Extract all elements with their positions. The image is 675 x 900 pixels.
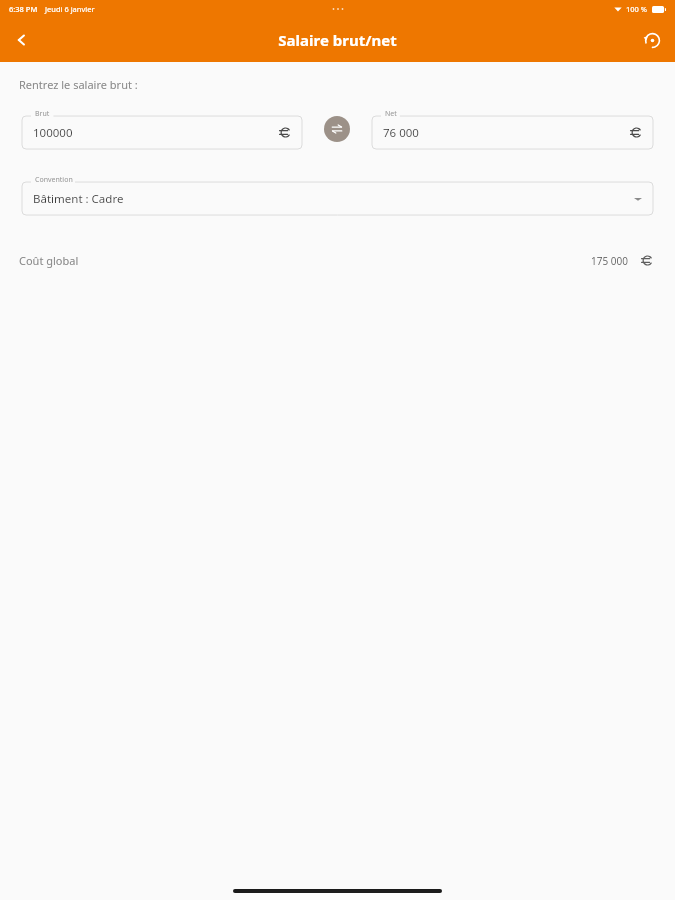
button[interactable]: Swap brut and net xyxy=(324,116,350,142)
staticText: 76 000 xyxy=(383,125,419,141)
staticText: Bâtiment : Cadre xyxy=(33,191,124,207)
staticText: Rentrez le salaire brut : xyxy=(19,77,138,92)
button[interactable]: Convention xyxy=(22,175,653,215)
button[interactable]: Brut xyxy=(22,109,302,149)
staticText: Convention xyxy=(35,175,73,185)
staticText: Coût global xyxy=(19,253,79,268)
staticText: 175 000 xyxy=(591,254,628,268)
staticText: Brut xyxy=(35,109,50,119)
staticText: 6:38 PM xyxy=(9,4,38,14)
staticText: 100000 xyxy=(33,125,73,141)
button[interactable]: Net xyxy=(372,109,653,149)
staticText: Net xyxy=(385,109,397,119)
staticText: Salaire brut/net xyxy=(278,30,397,50)
staticText: Jeudi 6 janvier xyxy=(45,4,95,14)
staticText: 100 % xyxy=(626,4,648,14)
button[interactable]: History xyxy=(635,23,669,57)
button[interactable]: Back xyxy=(4,22,40,58)
